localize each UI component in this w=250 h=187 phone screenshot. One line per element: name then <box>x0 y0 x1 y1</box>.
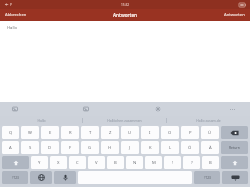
button[interactable]: Backspace <box>221 126 248 139</box>
staticText: J <box>129 145 131 151</box>
button[interactable]: N <box>126 156 143 169</box>
staticText: A <box>9 145 12 151</box>
staticText: D <box>48 145 52 151</box>
button[interactable]: ! <box>164 156 181 169</box>
staticText: W <box>28 130 32 136</box>
button[interactable]: Ü <box>201 126 219 139</box>
staticText: Ö <box>188 145 192 151</box>
button[interactable]: D <box>41 141 59 154</box>
button[interactable]: Insert photo <box>12 106 18 112</box>
staticText: B <box>209 160 212 166</box>
staticText: Q <box>9 130 13 136</box>
staticText: ! <box>172 160 174 166</box>
button[interactable]: S <box>21 141 39 154</box>
staticText: R <box>69 130 72 136</box>
button[interactable]: More <box>226 104 238 114</box>
button[interactable]: Hallo <box>0 116 82 125</box>
staticText: ? <box>191 160 193 166</box>
staticText: N <box>133 160 137 166</box>
staticText: Hallo zusam.de <box>196 118 221 123</box>
button[interactable]: Stickers <box>155 106 161 112</box>
staticText: C <box>76 160 79 166</box>
button[interactable]: U <box>121 126 139 139</box>
button[interactable]: T <box>81 126 99 139</box>
staticText: L <box>169 145 172 151</box>
staticText: S <box>29 145 32 151</box>
staticText: K <box>149 145 152 151</box>
button[interactable]: Hallöchen zusammen <box>83 116 166 125</box>
staticText: P <box>10 3 12 7</box>
staticText: Hallo <box>7 25 18 31</box>
staticText: Antworten <box>113 12 138 18</box>
button[interactable]: B <box>107 156 124 169</box>
staticText: H <box>108 145 112 151</box>
button[interactable]: J <box>121 141 139 154</box>
button[interactable]: O <box>161 126 179 139</box>
staticText: B <box>114 160 117 166</box>
button[interactable]: Y <box>31 156 48 169</box>
button[interactable]: Shift <box>2 156 29 169</box>
staticText: X <box>57 160 60 166</box>
staticText: 15:32 <box>121 3 130 7</box>
button[interactable]: Insert photo <box>83 106 89 112</box>
staticText: Z <box>109 130 112 136</box>
staticText: F <box>69 145 72 151</box>
button[interactable]: R <box>61 126 79 139</box>
staticText: ?123 <box>12 176 19 180</box>
button[interactable]: E <box>41 126 59 139</box>
staticText: Ä <box>209 145 212 151</box>
staticText: Ü <box>208 130 212 136</box>
button[interactable]: G <box>81 141 99 154</box>
button[interactable]: Dictate <box>54 171 76 184</box>
button[interactable]: Shift <box>221 156 248 169</box>
button[interactable]: Return <box>221 141 248 154</box>
button[interactable]: C <box>69 156 86 169</box>
button[interactable]: Ö <box>181 141 199 154</box>
staticText: O <box>168 130 172 136</box>
button[interactable]: M <box>145 156 162 169</box>
button[interactable]: Hallo zusam.de <box>167 116 250 125</box>
staticText: Antworten <box>224 12 245 18</box>
button[interactable]: W <box>21 126 39 139</box>
staticText: ?123 <box>204 176 211 180</box>
button[interactable]: A <box>2 141 19 154</box>
button[interactable]: H <box>101 141 119 154</box>
button[interactable]: B <box>202 156 219 169</box>
staticText: Return <box>229 145 240 150</box>
button[interactable]: Antworten <box>224 9 245 21</box>
staticText: V <box>95 160 98 166</box>
button[interactable]: L <box>161 141 179 154</box>
button[interactable]: ? <box>183 156 200 169</box>
staticText: Y <box>38 160 41 166</box>
staticText: P <box>189 130 192 136</box>
button[interactable]: Z <box>101 126 119 139</box>
button[interactable]: P <box>181 126 199 139</box>
button[interactable]: Ä <box>201 141 219 154</box>
button[interactable]: ?123 <box>194 171 220 184</box>
staticText: E <box>49 130 52 136</box>
button[interactable]: Abbrechen <box>5 9 27 21</box>
staticText: T <box>89 130 92 136</box>
staticText: Hallo <box>37 118 46 123</box>
button[interactable]: F <box>61 141 79 154</box>
button[interactable]: V <box>88 156 105 169</box>
button[interactable]: ?123 <box>2 171 28 184</box>
staticText: I <box>149 130 151 136</box>
button[interactable]: Hide keyboard <box>222 171 248 184</box>
button[interactable]: I <box>141 126 159 139</box>
button[interactable]: Change language <box>30 171 52 184</box>
staticText: Abbrechen <box>5 12 27 18</box>
staticText: G <box>88 145 92 151</box>
button[interactable]: X <box>50 156 67 169</box>
button[interactable]: Q <box>2 126 19 139</box>
staticText: M <box>152 160 156 166</box>
button[interactable]: K <box>141 141 159 154</box>
staticText: U <box>128 130 132 136</box>
staticText: Hallöchen zusammen <box>107 118 142 123</box>
